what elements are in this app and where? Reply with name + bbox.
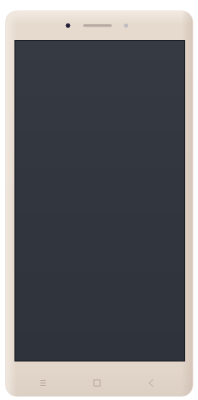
button[interactable]: Back <box>140 372 162 394</box>
button[interactable]: Home <box>86 372 108 394</box>
button[interactable]: Menu <box>33 372 55 394</box>
